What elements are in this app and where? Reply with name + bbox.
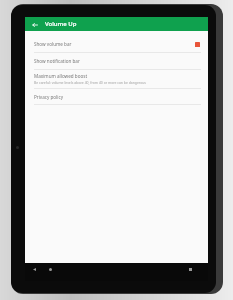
staticText: Be careful: volume levels above 40, from… [34,80,146,85]
button[interactable]: Show volume bar [25,36,208,52]
button[interactable]: Privacy policy [25,89,208,104]
staticText: Privacy policy [34,94,64,100]
button[interactable]: Maximum allowed boost [25,70,208,88]
staticText: Maximum allowed boost [34,73,88,79]
button[interactable]: Recent apps [185,264,195,274]
button[interactable]: Back [29,264,39,274]
staticText: Volume Up [45,20,77,28]
button[interactable]: Show notification bar [25,53,208,69]
staticText: Show notification bar [34,58,200,64]
button[interactable]: Back [29,19,40,30]
other: Enabled [195,42,200,47]
button[interactable]: Home [45,264,55,274]
staticText: Show volume bar [34,41,195,47]
